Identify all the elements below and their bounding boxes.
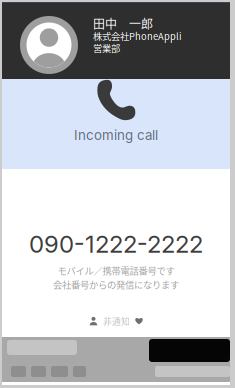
staticText: Incoming call (74, 127, 158, 143)
staticText: 090-1222-2222 (29, 229, 203, 258)
button[interactable]: 田中 一郎 (2, 3, 230, 79)
staticText: 株式会社PhoneAppli (93, 29, 182, 43)
staticText: 営業部 (93, 41, 120, 55)
button[interactable]: 090-1222-2222 (29, 234, 203, 254)
staticText: 会社番号からの発信になります (53, 278, 179, 291)
staticText: 非通知 (103, 315, 130, 327)
staticText: 田中 一郎 (93, 15, 153, 32)
staticText: モバイル／携帯電話番号です (57, 264, 174, 277)
